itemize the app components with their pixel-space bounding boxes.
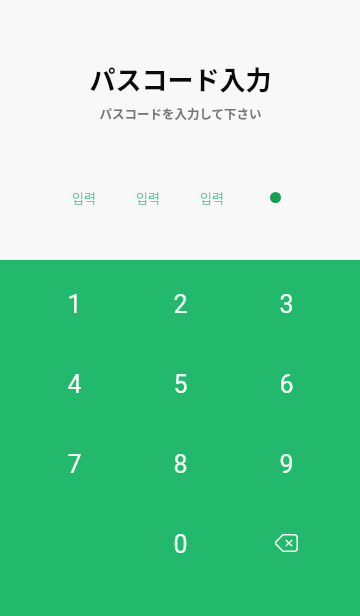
button[interactable]: 7 xyxy=(0,424,120,504)
staticText: 7 xyxy=(67,450,82,479)
button[interactable]: 0 xyxy=(120,504,240,584)
button[interactable]: 9 xyxy=(240,424,360,504)
staticText: パスコード入力 xyxy=(89,60,272,98)
staticText: 4 xyxy=(67,370,82,399)
staticText: 9 xyxy=(279,450,294,479)
staticText: 0 xyxy=(173,530,188,559)
staticText: 입력 xyxy=(200,188,224,207)
button[interactable]: 8 xyxy=(120,424,240,504)
staticText: 8 xyxy=(173,450,188,479)
staticText: パスコードを入力して下さい xyxy=(99,104,262,122)
staticText: 6 xyxy=(279,370,294,399)
button[interactable]: 2 xyxy=(120,264,240,344)
staticText: 입력 xyxy=(72,188,96,207)
staticText: 2 xyxy=(173,290,188,319)
button[interactable]: 1 xyxy=(0,264,120,344)
button[interactable]: Backspace xyxy=(240,504,360,584)
staticText: 1 xyxy=(67,290,82,319)
button[interactable]: 4 xyxy=(0,344,120,424)
button[interactable]: 5 xyxy=(120,344,240,424)
button[interactable]: 3 xyxy=(240,264,360,344)
staticText: 5 xyxy=(173,370,188,399)
staticText: 3 xyxy=(279,290,294,319)
other: Backspace xyxy=(274,534,298,552)
staticText: 입력 xyxy=(136,188,160,207)
button[interactable]: 6 xyxy=(240,344,360,424)
